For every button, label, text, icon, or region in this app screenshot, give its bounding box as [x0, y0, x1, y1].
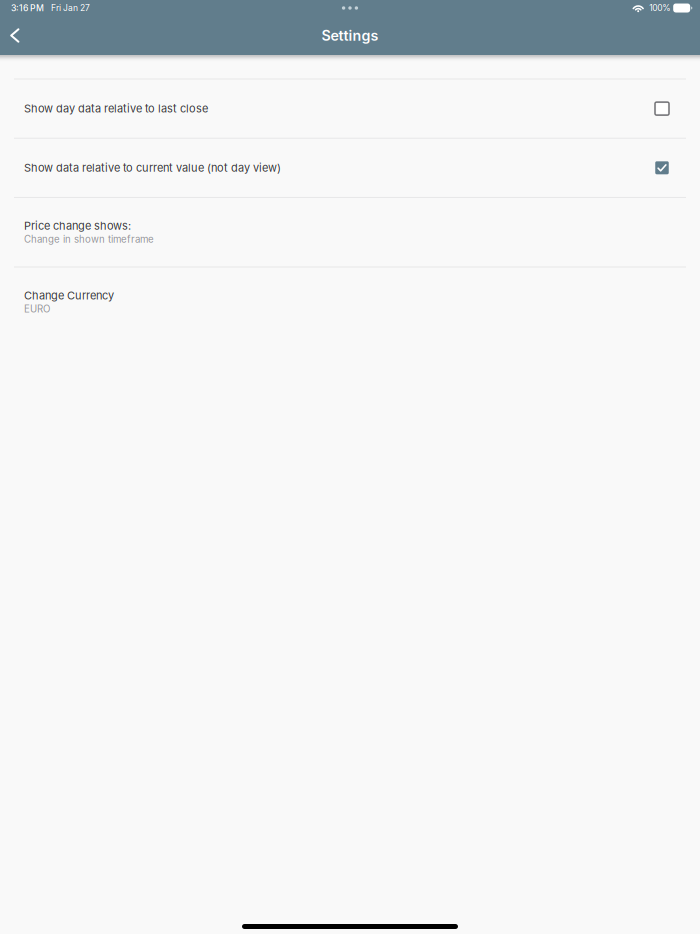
staticText: 3:16 PM [11, 3, 44, 13]
button[interactable]: Change Currency [0, 267, 700, 336]
staticText: Price change shows: [24, 219, 131, 232]
staticText: Change Currency [24, 289, 114, 302]
button[interactable]: Back [0, 16, 33, 55]
staticText: Show day data relative to last close [24, 102, 208, 115]
button[interactable]: Price change shows: [0, 198, 700, 266]
staticText: EURO [24, 303, 50, 315]
button[interactable]: Show data relative to current value (not… [0, 139, 700, 197]
staticText: Fri Jan 27 [51, 3, 90, 13]
staticText: Settings [321, 27, 378, 44]
staticText: Show data relative to current value (not… [24, 161, 281, 174]
staticText: 100% [649, 3, 670, 13]
staticText: Change in shown timeframe [24, 233, 154, 245]
button[interactable]: Show day data relative to last close [0, 79, 700, 138]
